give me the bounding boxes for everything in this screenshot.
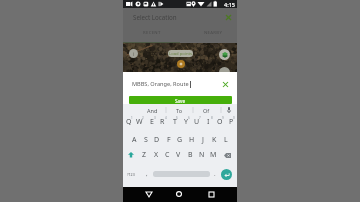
button[interactable]: Y	[180, 116, 191, 128]
button[interactable]: Layers	[219, 49, 230, 60]
staticText: MBBS, Orange, Route	[132, 80, 189, 88]
staticText: C	[165, 150, 170, 160]
button[interactable]: Recents	[205, 188, 217, 200]
button[interactable]: T	[169, 116, 180, 128]
staticText: ?123	[127, 172, 135, 177]
button[interactable]: Back	[143, 188, 155, 200]
button[interactable]: Of	[193, 104, 219, 116]
button[interactable]: Z	[139, 149, 150, 161]
staticText: U	[194, 117, 200, 127]
button[interactable]: Add	[177, 60, 185, 68]
staticText: Select Location	[133, 13, 177, 21]
button[interactable]: Enter	[221, 169, 232, 180]
staticText: H	[189, 135, 195, 145]
staticText: W	[136, 117, 143, 127]
button[interactable]: RECENT	[136, 27, 168, 39]
staticText: 5	[176, 116, 178, 120]
button[interactable]: ,	[142, 167, 151, 181]
staticText: 2	[142, 116, 144, 120]
button[interactable]: N	[196, 149, 207, 161]
button[interactable]: L	[220, 134, 231, 146]
staticText: D	[154, 135, 160, 145]
staticText: A	[132, 135, 137, 145]
staticText: 6	[188, 116, 190, 120]
staticText: 7	[199, 116, 201, 120]
staticText: V	[176, 150, 181, 160]
button[interactable]: U	[191, 116, 202, 128]
staticText: 3	[154, 116, 156, 120]
button[interactable]: Info	[129, 49, 138, 58]
button[interactable]: Shift	[124, 149, 137, 161]
button[interactable]: Backspace	[221, 149, 234, 161]
staticText: T	[173, 117, 177, 127]
button[interactable]: D	[151, 134, 162, 146]
staticText: E	[150, 117, 154, 127]
staticText: 1	[131, 116, 133, 120]
button[interactable]: P	[226, 116, 237, 128]
button[interactable]: Voice input	[223, 104, 235, 116]
staticText: Q	[126, 117, 132, 127]
button[interactable]: X	[151, 149, 162, 161]
staticText: Y	[184, 117, 188, 127]
button[interactable]: C	[162, 149, 173, 161]
staticText: 0	[233, 116, 235, 120]
staticText: F	[167, 135, 171, 145]
staticText: N	[199, 150, 205, 160]
staticText: Z	[142, 150, 147, 160]
staticText: 4:15	[224, 1, 235, 8]
staticText: L	[224, 135, 228, 145]
staticText: K	[212, 135, 217, 145]
staticText: i	[133, 51, 135, 57]
button[interactable]: B	[185, 149, 196, 161]
button[interactable]: S	[140, 134, 151, 146]
staticText: RECENT	[143, 30, 161, 36]
button[interactable]: O	[214, 116, 225, 128]
staticText: Of	[203, 107, 210, 114]
button[interactable]: V	[173, 149, 184, 161]
staticText: M	[210, 150, 217, 160]
button[interactable]: M	[208, 149, 219, 161]
button[interactable]: NEARBY	[197, 27, 229, 39]
staticText: .	[214, 170, 216, 178]
staticText: I	[207, 117, 210, 127]
staticText: Save	[175, 98, 186, 104]
staticText: P	[229, 117, 234, 127]
button[interactable]: To	[166, 104, 192, 116]
staticText: To	[176, 107, 183, 114]
staticText: And	[147, 107, 158, 114]
button[interactable]: R	[157, 116, 168, 128]
button[interactable]: J	[197, 134, 208, 146]
button[interactable]: K	[209, 134, 220, 146]
button[interactable]: Clear	[221, 80, 230, 89]
staticText: R	[160, 117, 165, 127]
button[interactable]: Close	[223, 12, 233, 22]
staticText: ,	[146, 170, 148, 178]
button[interactable]: Load points	[168, 50, 193, 57]
button[interactable]: ?123	[124, 167, 138, 181]
button[interactable]: Home	[173, 188, 185, 200]
button[interactable]: A	[129, 134, 140, 146]
button[interactable]: And	[139, 104, 165, 116]
staticText: 8	[211, 116, 213, 120]
button[interactable]: Q	[123, 116, 134, 128]
button[interactable]: I	[203, 116, 214, 128]
button[interactable]: W	[134, 116, 145, 128]
button[interactable]: H	[186, 134, 197, 146]
button[interactable]: .	[210, 167, 219, 181]
staticText: J	[202, 135, 204, 145]
staticText: B	[188, 150, 193, 160]
button[interactable]: Save	[129, 96, 232, 104]
staticText: X	[154, 150, 159, 160]
staticText: Load points	[169, 51, 193, 57]
button[interactable]: E	[146, 116, 157, 128]
button[interactable]: MBBS, Orange, Route	[132, 74, 230, 94]
staticText: S	[144, 135, 148, 145]
staticText: G	[177, 135, 183, 145]
staticText: 9	[222, 116, 224, 120]
button[interactable]: F	[163, 134, 174, 146]
button[interactable]: G	[174, 134, 185, 146]
staticText: NEARBY	[204, 30, 223, 36]
button[interactable]: Select Location	[133, 8, 231, 25]
staticText: O	[217, 117, 223, 127]
